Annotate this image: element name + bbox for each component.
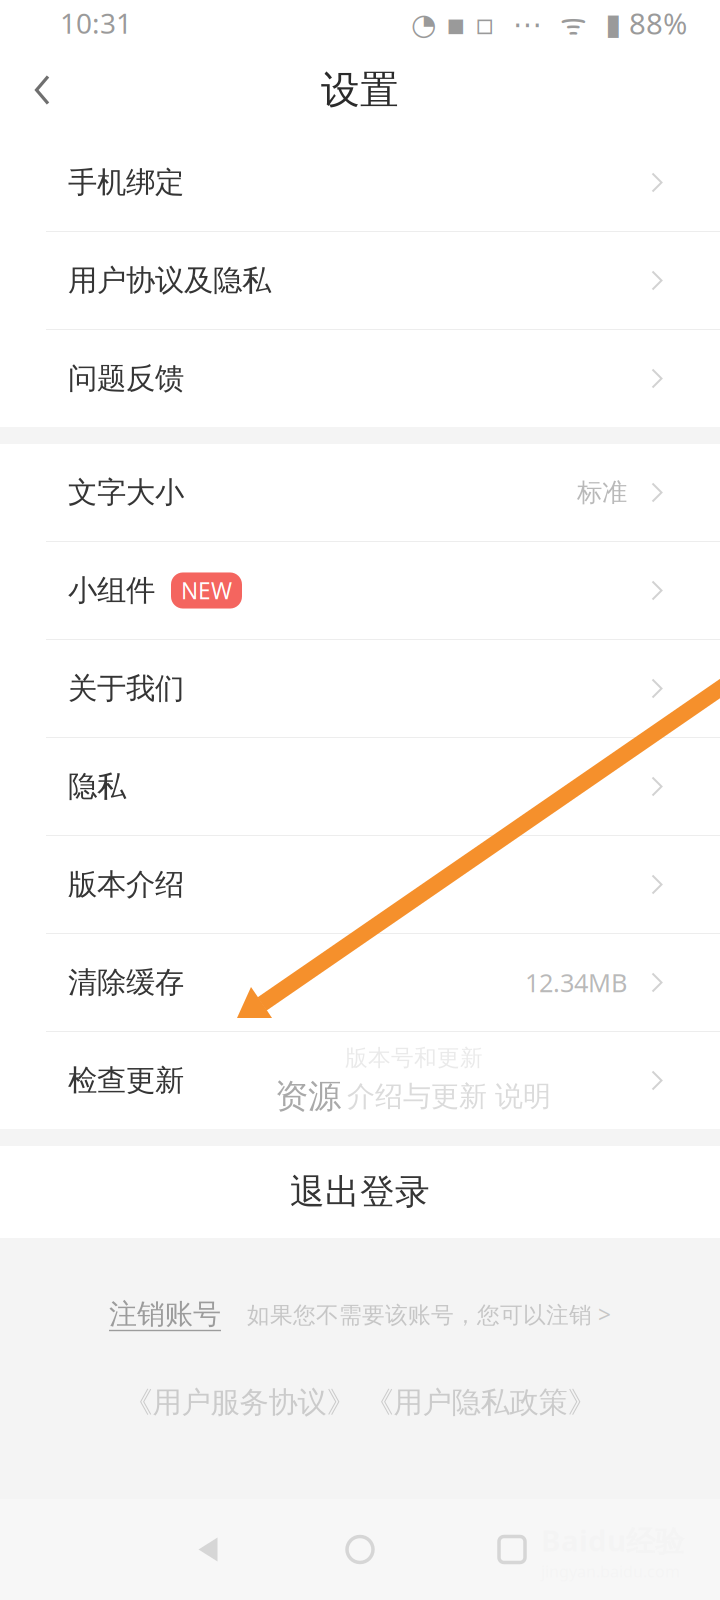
button[interactable]: 退出登录 (0, 1146, 720, 1238)
staticText: 用户协议及隐私 (68, 262, 271, 298)
button[interactable]: Back (156, 1499, 260, 1600)
button[interactable]: 注销账号 (109, 1297, 221, 1331)
button[interactable]: 版本介绍 (0, 836, 720, 934)
button[interactable]: 文字大小 (0, 444, 720, 542)
staticText: 《用户服务协议》 《用户隐私政策》 (123, 1384, 596, 1420)
staticText: 标准 (577, 477, 627, 508)
button[interactable]: 问题反馈 (0, 330, 720, 427)
button[interactable]: 检查更新 (0, 1032, 720, 1129)
staticText: 小组件 (68, 572, 155, 608)
staticText: 注销账号 (109, 1297, 221, 1331)
button[interactable]: 清除缓存 (0, 934, 720, 1032)
staticText: NEW (181, 575, 232, 605)
staticText: 资源 (275, 1076, 341, 1117)
button[interactable]: 隐私 (0, 738, 720, 836)
staticText: 手机绑定 (68, 164, 184, 200)
staticText: 文字大小 (68, 474, 184, 510)
staticText: 10:31 (60, 4, 132, 42)
staticText: 问题反馈 (68, 360, 184, 396)
staticText: 关于我们 (68, 670, 184, 706)
staticText: 设置 (321, 66, 399, 114)
staticText: 12.34MB (525, 966, 627, 999)
button[interactable]: 小组件 (0, 542, 720, 640)
button[interactable]: Home (308, 1499, 412, 1600)
staticText: 版本介绍 (68, 866, 184, 902)
staticText: 隐私 (68, 768, 126, 804)
button[interactable]: Recents (460, 1499, 564, 1600)
staticText: 版本号和更新 (345, 1044, 483, 1072)
button[interactable]: 手机绑定 (0, 134, 720, 232)
button[interactable]: 用户协议及隐私 (0, 232, 720, 330)
staticText: 退出登录 (290, 1171, 430, 1213)
staticText: 清除缓存 (68, 964, 184, 1000)
staticText: 检查更新 (68, 1062, 184, 1098)
staticText: ◔ ▪ ▫ ⋯ ᯤ ▮ 88% (411, 3, 687, 42)
button[interactable]: 关于我们 (0, 640, 720, 738)
button[interactable]: Back (0, 48, 77, 132)
staticText: 如果您不需要该账号，您可以注销 > (247, 1299, 611, 1329)
staticText: 介绍与更新 说明 (347, 1079, 551, 1113)
